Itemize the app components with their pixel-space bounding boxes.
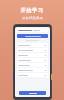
- button[interactable]: 开始: [19, 91, 46, 95]
- button[interactable]: [17, 28, 48, 32]
- button[interactable]: [17, 63, 48, 67]
- button[interactable]: [17, 58, 48, 62]
- staticText: 尽在精准典籍: [22, 16, 43, 20]
- button[interactable]: [17, 48, 48, 52]
- button[interactable]: [17, 43, 48, 47]
- button[interactable]: [17, 68, 48, 72]
- button[interactable]: [17, 34, 48, 38]
- button[interactable]: [17, 53, 48, 57]
- staticText: 开始学习: [20, 7, 44, 14]
- button[interactable]: [17, 73, 48, 77]
